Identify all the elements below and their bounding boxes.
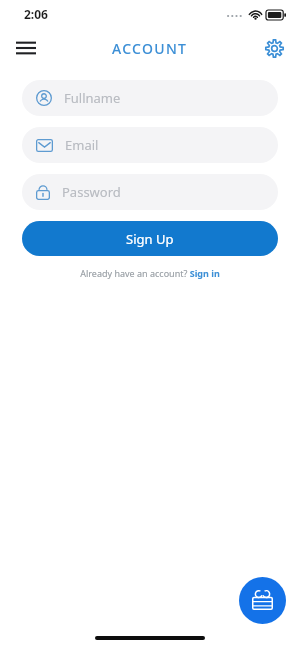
button[interactable]: Settings	[256, 30, 292, 66]
staticText: Fullname	[64, 89, 121, 107]
button[interactable]: Menu	[8, 30, 44, 66]
button[interactable]: Sign Up	[22, 221, 278, 256]
button[interactable]: Password	[22, 174, 278, 210]
button[interactable]: Gifts	[239, 577, 286, 624]
button[interactable]: Email	[22, 127, 278, 163]
staticText: 2:06	[24, 6, 48, 22]
button[interactable]: Already have an account? Sign in	[80, 267, 220, 279]
button[interactable]: Fullname	[22, 80, 278, 116]
staticText: Already have an account? Sign in	[80, 267, 220, 279]
staticText: ACCOUNT	[112, 39, 188, 58]
staticText: Sign Up	[126, 230, 174, 248]
staticText: Email	[65, 136, 99, 154]
staticText: Password	[62, 183, 121, 201]
